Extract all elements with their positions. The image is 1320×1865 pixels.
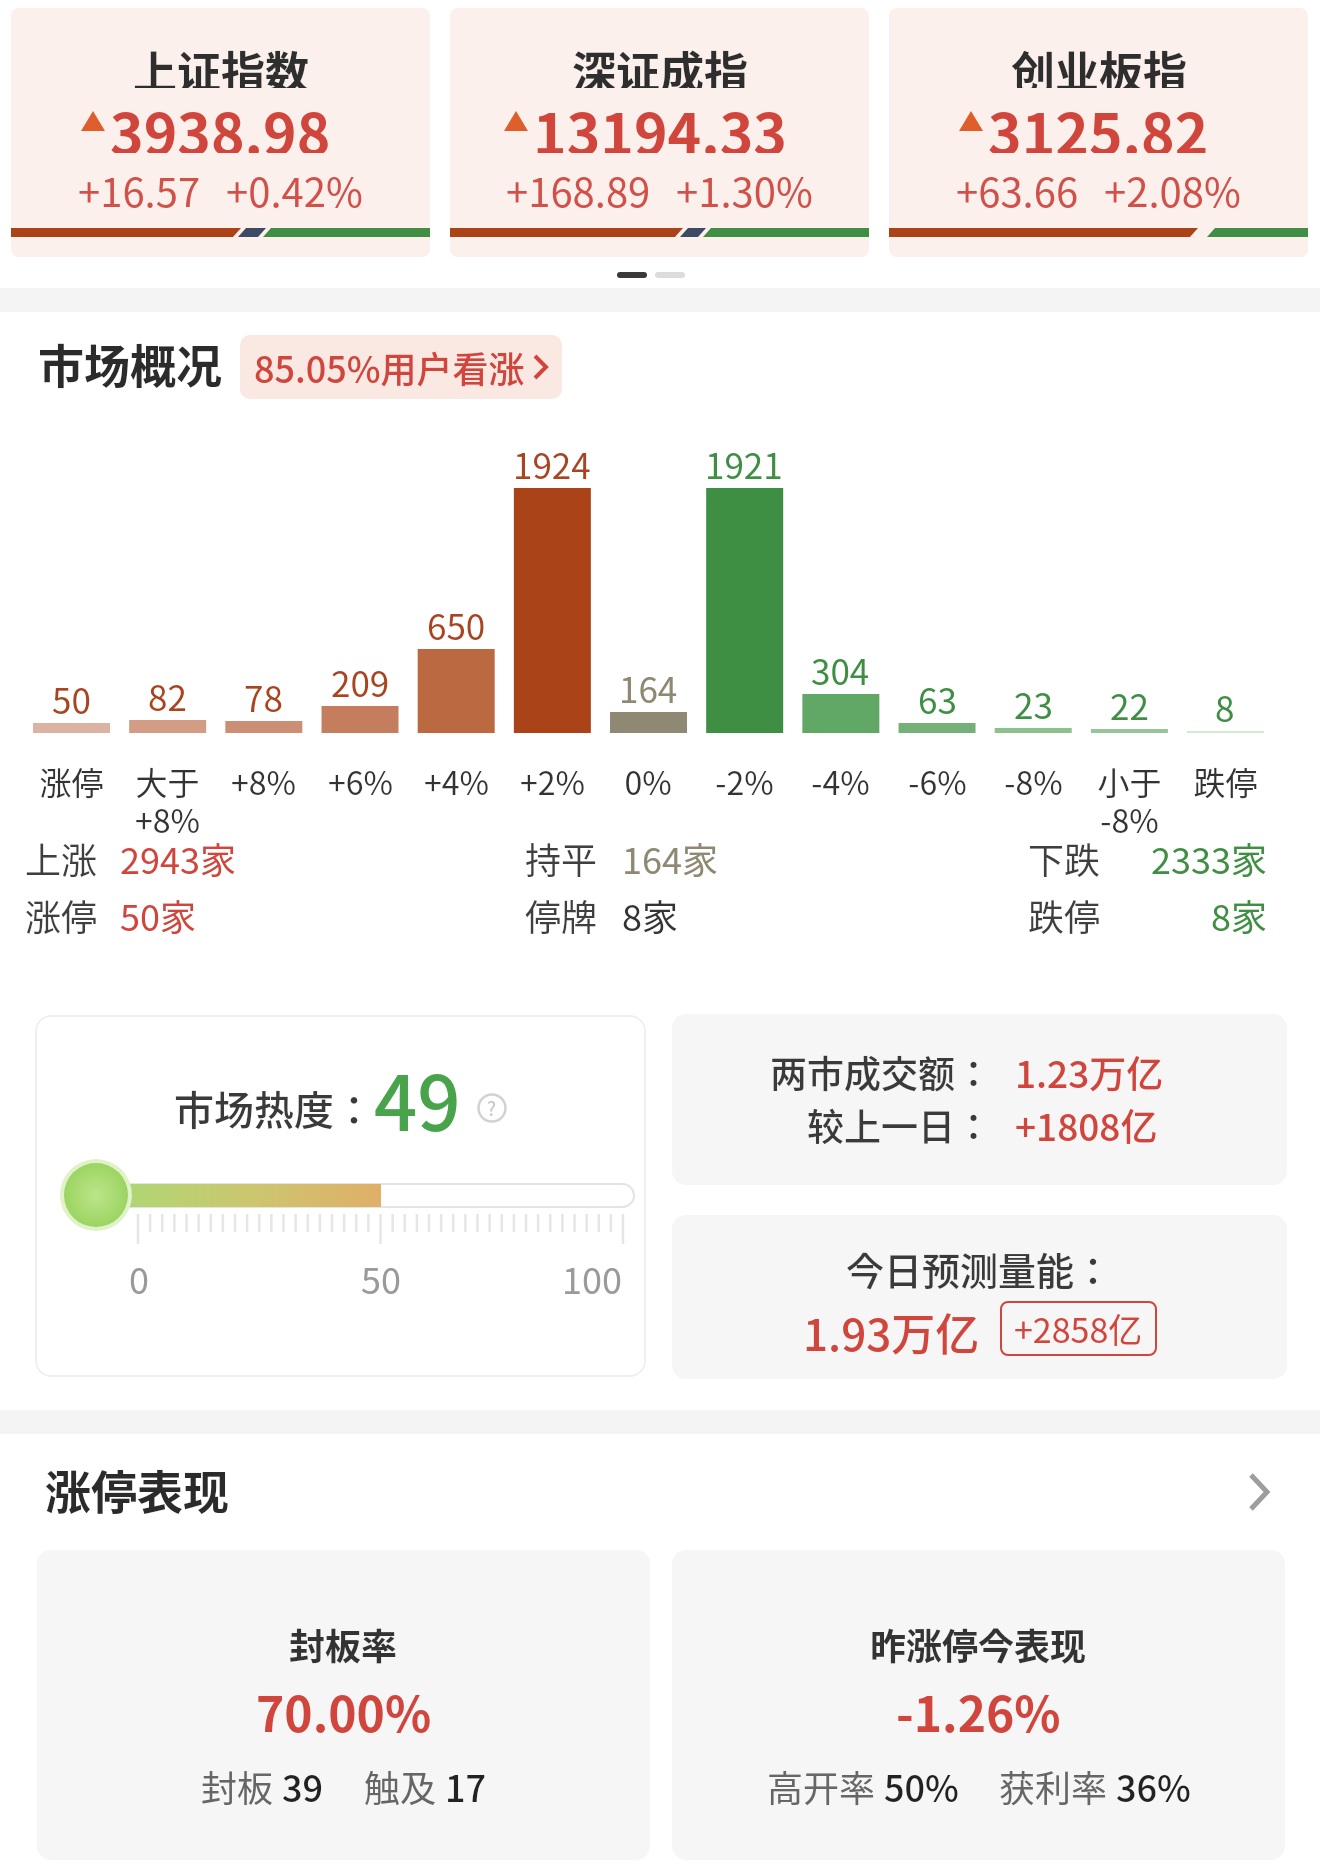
staticText: 小于 -8% bbox=[1097, 758, 1162, 838]
staticText: 8家 bbox=[1211, 889, 1267, 941]
button[interactable]: 封板率 bbox=[37, 1550, 650, 1860]
staticText: +16.57 bbox=[78, 161, 201, 209]
staticText: 昨涨停今表现 bbox=[870, 1618, 1087, 1670]
staticText: 0% bbox=[624, 758, 672, 804]
staticText: 1921 bbox=[705, 438, 783, 480]
button[interactable]: 深证成指 bbox=[450, 8, 869, 257]
staticText: 50 bbox=[361, 1252, 401, 1296]
staticText: 封板率 bbox=[289, 1618, 398, 1670]
staticText: 63 bbox=[918, 673, 957, 715]
staticText: 触及 bbox=[364, 1760, 445, 1812]
staticText: 3938.98 bbox=[110, 89, 331, 153]
staticText: 50家 bbox=[120, 889, 196, 941]
staticText: 持平 bbox=[525, 832, 598, 884]
staticText: 0 bbox=[129, 1252, 149, 1296]
staticText: 3125.82 bbox=[988, 89, 1209, 153]
staticText: +2858亿 bbox=[1014, 1304, 1143, 1353]
staticText: 获利率 bbox=[999, 1760, 1116, 1812]
staticText: 停牌 bbox=[525, 889, 598, 941]
staticText: +168.89 bbox=[506, 161, 651, 209]
button[interactable]: 昨涨停今表现 bbox=[672, 1550, 1285, 1860]
staticText: 82 bbox=[148, 670, 187, 712]
staticText: 304 bbox=[811, 644, 870, 686]
staticText: 23 bbox=[1014, 678, 1053, 720]
staticText: 2333家 bbox=[1151, 832, 1267, 884]
staticText: -1.26% bbox=[896, 1676, 1061, 1746]
staticText: 两市成交额： bbox=[770, 1045, 992, 1097]
staticText: 跌停 bbox=[1193, 758, 1258, 804]
staticText: 164家 bbox=[622, 832, 718, 884]
staticText: 13194.33 bbox=[533, 89, 787, 153]
button[interactable]: 创业板指 bbox=[889, 8, 1308, 257]
staticText: 封板 bbox=[201, 1760, 282, 1812]
staticText: +1.30% bbox=[676, 161, 813, 209]
staticText: 市场概况 bbox=[38, 330, 222, 396]
staticText: +8% bbox=[231, 758, 296, 804]
staticText: 36% bbox=[1116, 1760, 1191, 1812]
staticText: +0.42% bbox=[226, 161, 363, 209]
staticText: 8 bbox=[1215, 681, 1235, 723]
staticText: -4% bbox=[811, 758, 870, 804]
staticText: 1.23万亿 bbox=[1015, 1045, 1164, 1097]
staticText: 涨停表现 bbox=[45, 1456, 229, 1516]
staticText: 209 bbox=[331, 656, 390, 698]
staticText: 164 bbox=[619, 662, 678, 704]
button[interactable] bbox=[35, 1015, 646, 1377]
staticText: ? bbox=[487, 1094, 497, 1122]
staticText: 50 bbox=[52, 673, 91, 715]
staticText: +6% bbox=[328, 758, 393, 804]
staticText: +63.66 bbox=[956, 161, 1079, 209]
staticText: 1924 bbox=[513, 438, 591, 480]
staticText: 22 bbox=[1110, 679, 1149, 721]
staticText: 2943家 bbox=[120, 832, 236, 884]
staticText: 17 bbox=[445, 1760, 487, 1812]
staticText: 下跌 bbox=[1028, 832, 1101, 884]
staticText: 大于 +8% bbox=[135, 758, 200, 838]
staticText: 85.05%用户看涨 bbox=[254, 341, 525, 393]
staticText: 今日预测量能： bbox=[846, 1241, 1113, 1296]
staticText: 70.00% bbox=[256, 1676, 432, 1746]
staticText: 78 bbox=[244, 671, 283, 713]
staticText: 39 bbox=[282, 1760, 324, 1812]
staticText: 50% bbox=[884, 1760, 959, 1812]
button[interactable] bbox=[672, 1215, 1287, 1379]
staticText: 深证成指 bbox=[572, 38, 748, 88]
button[interactable] bbox=[1230, 1462, 1290, 1522]
button[interactable]: 上证指数 bbox=[11, 8, 430, 257]
staticText: -8% bbox=[1004, 758, 1063, 804]
staticText: 100 bbox=[562, 1252, 622, 1296]
staticText: 1.93万亿 bbox=[803, 1300, 980, 1356]
staticText: 高开率 bbox=[767, 1760, 884, 1812]
staticText: 上涨 bbox=[25, 832, 98, 884]
staticText: 上证指数 bbox=[133, 38, 309, 88]
staticText: 涨停 bbox=[25, 889, 98, 941]
staticText: 创业板指 bbox=[1011, 38, 1187, 88]
staticText: +4% bbox=[424, 758, 489, 804]
button[interactable] bbox=[672, 1014, 1287, 1185]
staticText: -6% bbox=[908, 758, 967, 804]
staticText: +1808亿 bbox=[1015, 1098, 1158, 1150]
staticText: -2% bbox=[715, 758, 774, 804]
staticText: +2% bbox=[520, 758, 585, 804]
staticText: 较上一日： bbox=[807, 1098, 992, 1150]
staticText: 49 bbox=[374, 1043, 461, 1135]
staticText: 跌停 bbox=[1028, 889, 1101, 941]
staticText: 市场热度： bbox=[174, 1079, 374, 1137]
staticText: 涨停 bbox=[39, 758, 104, 804]
staticText: +2.08% bbox=[1104, 161, 1241, 209]
button[interactable]: 85.05%用户看涨 bbox=[240, 335, 562, 399]
staticText: 650 bbox=[427, 599, 486, 641]
staticText: 8家 bbox=[622, 889, 678, 941]
